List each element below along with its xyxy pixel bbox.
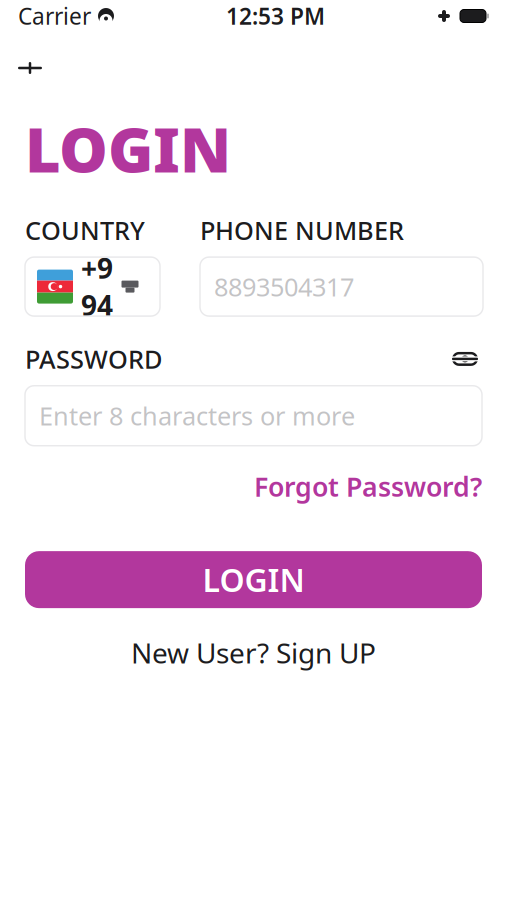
staticText: PHONE NUMBER bbox=[200, 213, 404, 247]
staticText: +994 bbox=[81, 249, 113, 324]
staticText: Forgot Password? bbox=[254, 469, 482, 504]
staticText: LOGIN bbox=[202, 558, 304, 601]
staticText: Carrier bbox=[18, 1, 91, 31]
button[interactable]: +994 bbox=[25, 257, 160, 316]
button[interactable]: Forgot Password? bbox=[254, 465, 482, 508]
staticText: COUNTRY bbox=[25, 213, 145, 247]
staticText: 8893504317 bbox=[214, 270, 354, 303]
button[interactable]: 8893504317 bbox=[200, 257, 483, 316]
button[interactable]: New User? Sign UP bbox=[131, 628, 376, 677]
button[interactable]: Show password bbox=[448, 345, 482, 373]
button[interactable]: Back bbox=[8, 46, 52, 90]
button[interactable]: LOGIN bbox=[25, 551, 482, 608]
staticText: PASSWORD bbox=[25, 342, 163, 376]
button[interactable]: Enter 8 characters or more bbox=[25, 386, 482, 446]
staticText: LOGIN bbox=[25, 108, 231, 189]
staticText: Enter 8 characters or more bbox=[39, 399, 355, 432]
staticText: New User? Sign UP bbox=[131, 634, 376, 671]
staticText: 12:53 PM bbox=[226, 1, 325, 31]
